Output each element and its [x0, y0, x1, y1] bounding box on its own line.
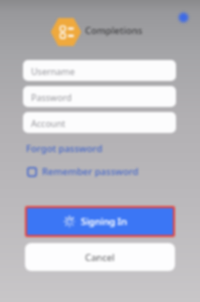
staticText: Account — [31, 117, 66, 129]
staticText: Forgot password — [26, 142, 103, 155]
staticText: Password — [31, 91, 72, 103]
button[interactable]: Password — [23, 86, 176, 107]
button[interactable]: Cancel — [25, 243, 175, 271]
button[interactable]: Remember password — [27, 165, 139, 178]
staticText: Signing In — [81, 215, 127, 228]
staticText: Username — [31, 65, 75, 77]
staticText: Remember password — [42, 165, 139, 178]
button[interactable]: Username — [23, 60, 176, 81]
button[interactable]: Forgot password — [26, 142, 103, 155]
button[interactable]: Signing In — [27, 208, 173, 235]
staticText: Completions — [85, 24, 143, 37]
button[interactable]: Account — [23, 112, 176, 133]
staticText: Cancel — [85, 251, 115, 264]
